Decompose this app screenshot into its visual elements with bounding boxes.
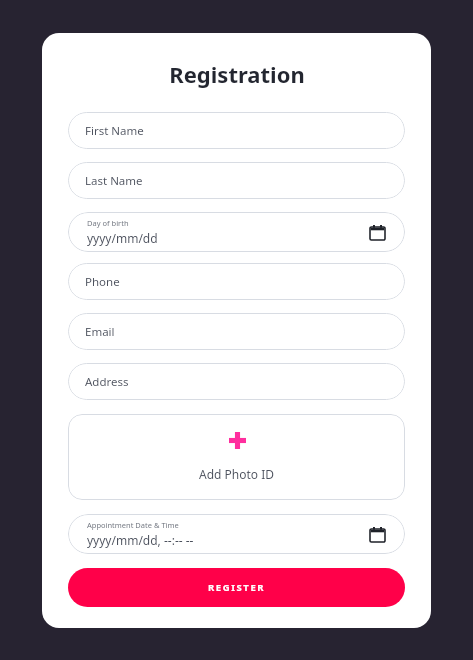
button[interactable]: Open date picker [366,523,388,545]
staticText: Day of birth [87,218,129,228]
staticText: Add Photo ID [199,466,275,482]
button[interactable]: Appointment Date & Time [68,514,405,554]
staticText: yyyy/mm/dd, --:-- -- [87,532,194,548]
button[interactable]: First Name [68,112,405,149]
button[interactable]: Add Photo ID [68,414,405,500]
staticText: Address [85,374,129,390]
staticText: REGISTER [208,581,266,594]
button[interactable]: REGISTER [68,568,405,607]
button[interactable]: Last Name [68,162,405,199]
staticText: First Name [85,123,144,139]
staticText: Registration [169,59,305,89]
button[interactable]: Phone [68,263,405,300]
button[interactable]: Email [68,313,405,350]
staticText: Last Name [85,173,143,189]
staticText: yyyy/mm/dd [87,230,158,246]
button[interactable]: Address [68,363,405,400]
staticText: Phone [85,274,120,290]
staticText: Email [85,324,115,340]
button[interactable]: Day of birth [68,212,405,252]
button[interactable]: Open date picker [366,221,388,243]
staticText: Appointment Date & Time [87,520,179,530]
